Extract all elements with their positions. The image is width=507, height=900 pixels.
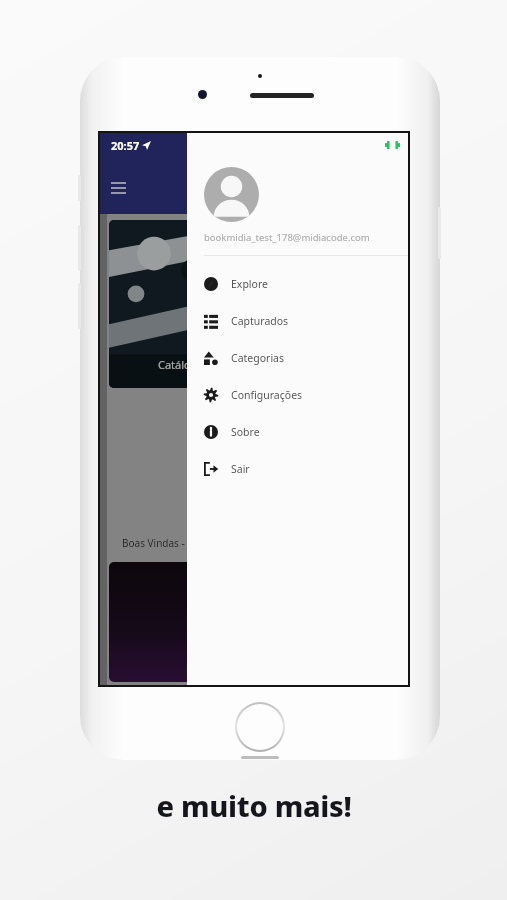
staticText: e muito mais! <box>156 786 352 825</box>
staticText: Catálogos <box>158 357 210 372</box>
staticText: Sair <box>231 462 250 476</box>
staticText: Sobre <box>231 425 260 439</box>
button[interactable]: Explore <box>187 265 408 302</box>
staticText: Capturados <box>231 314 289 328</box>
staticText: Configurações <box>231 388 303 402</box>
button[interactable]: Home <box>237 704 283 750</box>
staticText: 20:57 <box>111 138 140 153</box>
button[interactable]: Categorias <box>187 339 408 376</box>
staticText: Explore <box>231 277 268 291</box>
button[interactable]: Capturados <box>187 302 408 339</box>
staticText: Categorias <box>231 351 285 365</box>
button[interactable] <box>109 562 259 682</box>
button[interactable]: Catálogos <box>109 220 259 388</box>
button[interactable]: Menu <box>111 182 137 208</box>
staticText: bookmidia_test_178@midiacode.com <box>204 231 370 244</box>
button[interactable]: Sair <box>187 450 408 487</box>
button[interactable]: Configurações <box>187 376 408 413</box>
staticText: Boas Vindas - <box>122 536 185 550</box>
button[interactable]: Profile photo <box>204 167 259 222</box>
button[interactable]: Sobre <box>187 413 408 450</box>
other: Battery <box>385 141 400 149</box>
